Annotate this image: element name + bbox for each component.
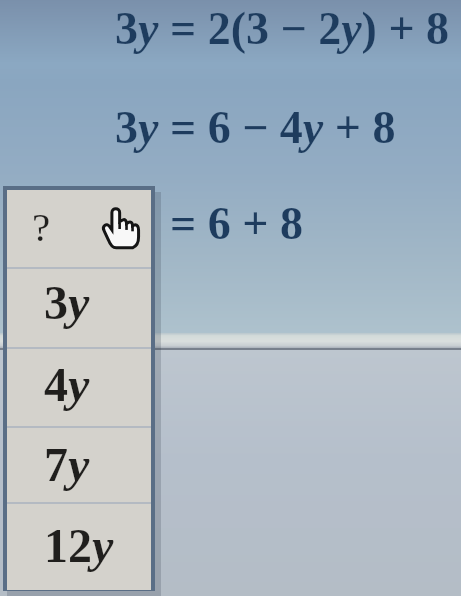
staticText: 7y [44, 438, 90, 491]
button[interactable]: 7y [7, 433, 151, 495]
staticText: 3y [44, 276, 90, 329]
button[interactable]: ? [7, 197, 151, 256]
staticText: = 6 + 8 [170, 198, 303, 249]
button[interactable]: 12y [7, 514, 151, 576]
staticText: 12y [44, 519, 114, 572]
staticText: ? [32, 204, 51, 249]
staticText: 3y = 6 − 4y + 8 [115, 102, 396, 153]
button[interactable]: 3y [7, 271, 151, 333]
staticText: 4y [44, 358, 90, 411]
button[interactable]: Pointer [99, 206, 142, 252]
button[interactable]: 4y [7, 353, 151, 415]
staticText: 3y = 2(3 − 2y) + 8 [115, 3, 450, 54]
